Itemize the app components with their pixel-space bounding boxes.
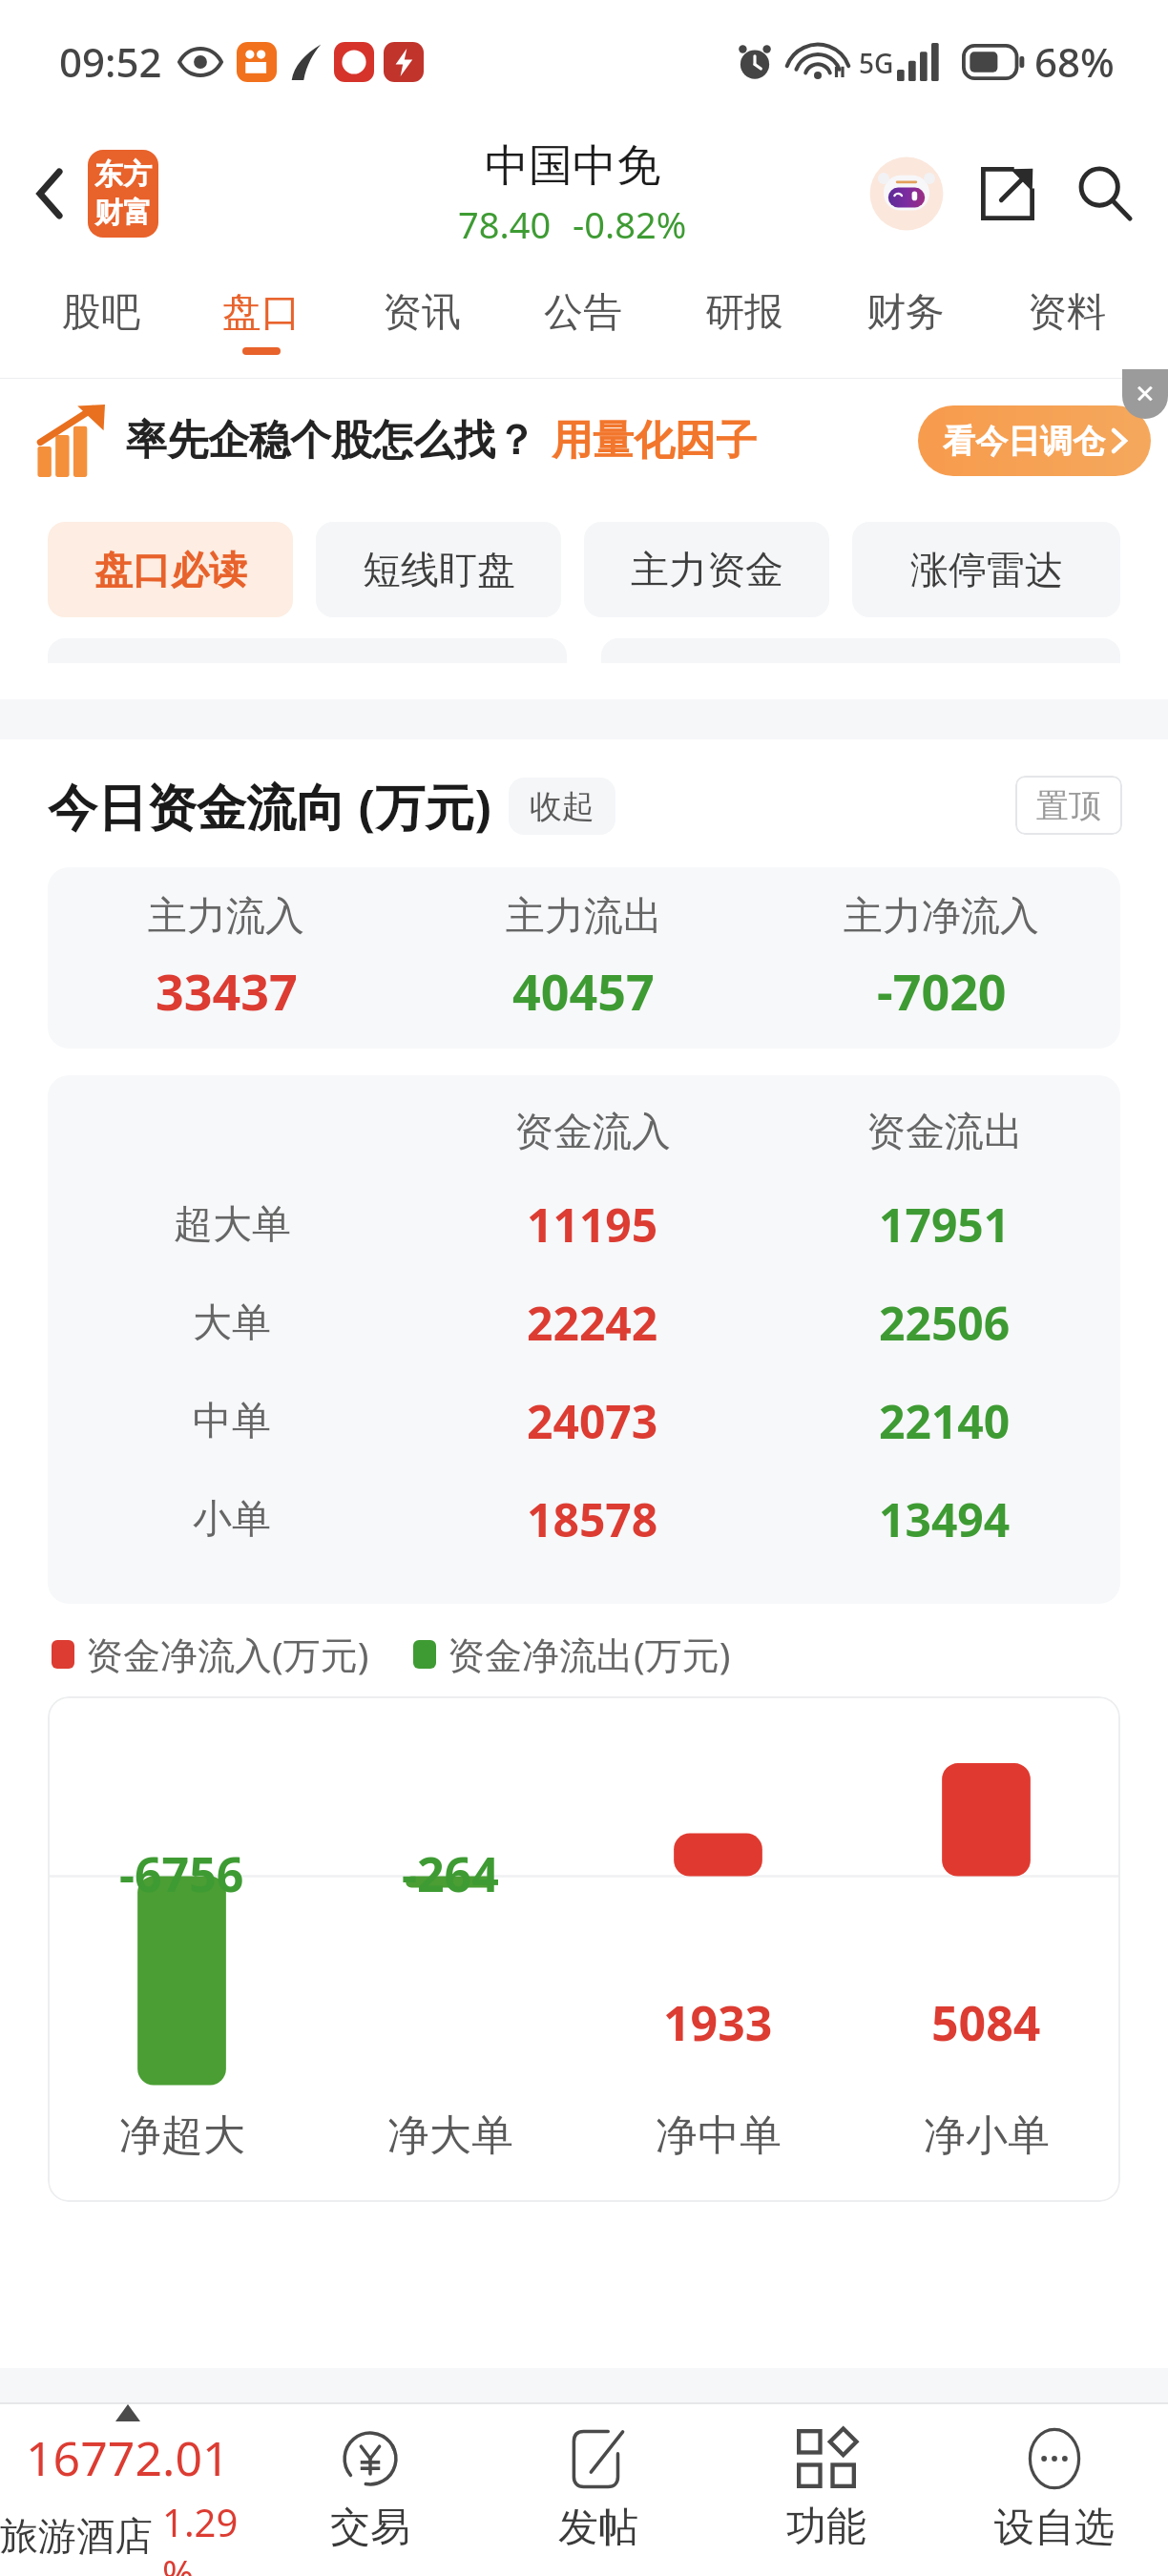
staticText: 主力资金 (631, 546, 783, 593)
staticText: 置顶 (1036, 785, 1101, 826)
staticText: 今日资金流向 (万元) (48, 772, 491, 840)
staticText: 股吧 (62, 288, 140, 338)
button[interactable]: 公告 (502, 265, 663, 378)
staticText: 22140 (879, 1390, 1011, 1452)
staticText: 16772.01 (26, 2425, 230, 2490)
button[interactable]: AI assistant (866, 154, 947, 234)
button[interactable]: 研报 (663, 265, 824, 378)
staticText: 78.40 (458, 199, 552, 249)
button[interactable]: Search (1067, 156, 1143, 232)
staticText: 资金净流出(万元) (448, 1629, 731, 1679)
staticText: -7020 (877, 957, 1007, 1025)
button[interactable]: 设自选 (940, 2404, 1168, 2576)
staticText: 资金净流入(万元) (86, 1629, 369, 1679)
staticText: 68% (1034, 34, 1115, 89)
staticText: 净大单 (387, 2109, 513, 2162)
staticText: 资讯 (383, 288, 461, 338)
staticText: 33437 (156, 957, 298, 1025)
staticText: 净中单 (656, 2109, 782, 2162)
staticText: 1933 (663, 1990, 773, 2055)
button[interactable]: 资讯 (342, 265, 502, 378)
staticText: 中国中免 (485, 138, 660, 194)
button[interactable]: 资料 (986, 265, 1147, 378)
button[interactable]: Close ad (1122, 369, 1168, 419)
staticText: 资金流入 (514, 1108, 671, 1157)
staticText: 净超大 (119, 2109, 245, 2162)
staticText: 40457 (512, 957, 655, 1025)
button[interactable]: 交易 (256, 2404, 484, 2576)
button[interactable]: Back (13, 157, 86, 230)
button[interactable]: -6756 (48, 1696, 1120, 2202)
staticText: 5G (859, 45, 894, 81)
staticText: 盘口必读 (94, 546, 247, 593)
button[interactable]: 短线盯盘 (316, 522, 561, 617)
button[interactable]: 涨停雷达 (852, 522, 1120, 617)
staticText: 东方 (94, 156, 152, 193)
staticText: 研报 (705, 288, 783, 338)
staticText: 超大单 (174, 1200, 291, 1250)
staticText: 设自选 (994, 2503, 1115, 2553)
staticText: 收起 (530, 786, 594, 827)
staticText: 17951 (879, 1194, 1011, 1256)
button[interactable]: 盘口 (181, 265, 342, 378)
button[interactable]: 16772.01 (0, 2404, 256, 2576)
button[interactable]: 股吧 (21, 265, 181, 378)
button[interactable]: 置顶 (1015, 776, 1122, 835)
staticText: 主力流出 (506, 892, 662, 942)
staticText: 22242 (527, 1292, 658, 1354)
staticText: 用量化因子 (552, 415, 757, 467)
staticText: 11195 (527, 1194, 658, 1256)
button[interactable]: East Money (88, 150, 158, 238)
staticText: 5084 (931, 1990, 1041, 2055)
button[interactable]: Share (970, 156, 1046, 232)
staticText: 09:52 (59, 34, 162, 89)
button[interactable]: 盘口必读 (48, 522, 293, 617)
staticText: 短线盯盘 (363, 546, 515, 593)
staticText: 小单 (193, 1495, 271, 1545)
staticText: 涨停雷达 (910, 546, 1063, 593)
staticText: 1.29% (162, 2496, 256, 2576)
staticText: 率先企稳个股怎么找？ (126, 415, 536, 467)
staticText: 财富 (94, 195, 152, 231)
staticText: 资料 (1028, 288, 1106, 338)
staticText: -6756 (119, 1841, 244, 1906)
staticText: 旅游酒店 (0, 2512, 153, 2560)
staticText: ✕ (1135, 380, 1156, 408)
staticText: 主力净流入 (844, 892, 1039, 942)
staticText: 交易 (330, 2503, 410, 2553)
staticText: 13494 (879, 1488, 1011, 1550)
staticText: 24073 (527, 1390, 658, 1452)
staticText: 中单 (193, 1397, 271, 1446)
staticText: 大单 (193, 1298, 271, 1348)
button[interactable]: 发帖 (484, 2404, 712, 2576)
button[interactable]: 财务 (824, 265, 986, 378)
staticText: 公告 (544, 288, 622, 338)
staticText: 22506 (879, 1292, 1011, 1354)
button[interactable]: 看今日调仓 (918, 405, 1151, 476)
button[interactable]: 资金流入 (48, 1075, 1120, 1604)
staticText: 看今日调仓 (943, 421, 1105, 462)
staticText: -0.82% (573, 199, 687, 249)
staticText: 盘口 (222, 288, 301, 338)
staticText: 资金流出 (866, 1108, 1023, 1157)
staticText: 18578 (527, 1488, 658, 1550)
button[interactable]: 收起 (509, 778, 615, 835)
staticText: 财务 (866, 288, 945, 338)
staticText: 净小单 (924, 2109, 1050, 2162)
button[interactable]: 主力流入 (48, 867, 1120, 1049)
staticText: 发帖 (558, 2503, 638, 2553)
staticText: 功能 (786, 2502, 866, 2552)
button[interactable]: 功能 (712, 2404, 940, 2576)
button[interactable]: 主力资金 (584, 522, 829, 617)
staticText: 主力流入 (148, 892, 304, 942)
staticText: -264 (402, 1841, 499, 1906)
